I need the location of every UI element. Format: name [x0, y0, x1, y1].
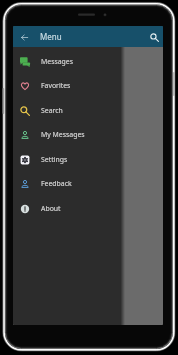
staticText: Favorites [41, 81, 71, 90]
button[interactable]: About [13, 196, 121, 221]
button[interactable]: Messages [13, 49, 121, 74]
button[interactable]: Settings [13, 147, 121, 172]
staticText: Search [41, 106, 63, 115]
button[interactable]: Feedback [13, 171, 121, 196]
button[interactable]: Search [13, 98, 121, 123]
staticText: Settings [41, 155, 68, 164]
button[interactable]: Favorites [13, 73, 121, 98]
staticText: Feedback [41, 179, 72, 188]
staticText: About [41, 204, 61, 213]
staticText: Menu [40, 31, 62, 42]
staticText: Messages [41, 57, 74, 66]
button[interactable]: Back [16, 29, 32, 45]
button[interactable]: Search [146, 29, 162, 45]
button[interactable]: My Messages [13, 122, 121, 147]
staticText: My Messages [41, 130, 85, 139]
